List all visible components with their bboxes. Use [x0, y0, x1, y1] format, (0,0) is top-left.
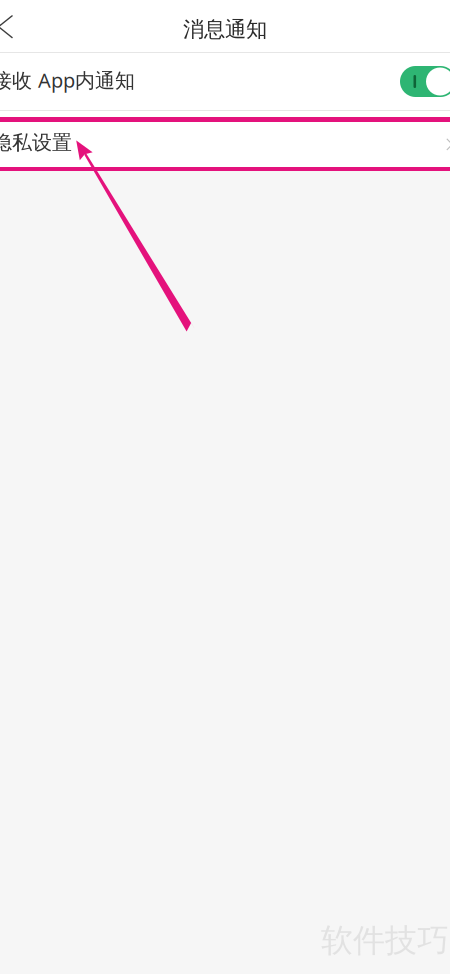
button[interactable]: 接收 App内通知 [0, 53, 450, 110]
staticText: 消息通知 [183, 16, 267, 43]
staticText: 隐私设置 [0, 130, 72, 155]
button[interactable]: Back [0, 0, 46, 52]
staticText: 接收 App内通知 [0, 67, 135, 93]
staticText: 软件技巧 [321, 921, 449, 960]
button[interactable]: 隐私设置 [0, 122, 450, 167]
